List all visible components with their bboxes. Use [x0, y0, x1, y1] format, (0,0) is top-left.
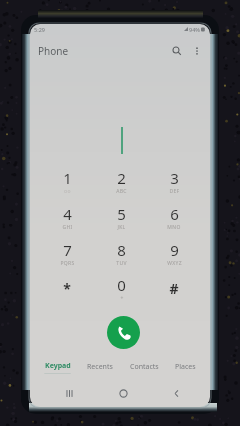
button[interactable]: 8 — [95, 237, 147, 271]
staticText: MNO — [167, 224, 181, 231]
staticText: Places — [175, 362, 196, 372]
staticText: Keypad — [45, 361, 71, 371]
staticText: 94% — [189, 26, 200, 33]
button[interactable]: 2 — [95, 165, 147, 199]
staticText: oo — [64, 188, 71, 195]
staticText: JKL — [117, 224, 126, 231]
staticText: TUV — [116, 260, 127, 267]
button[interactable]: Places — [172, 361, 199, 373]
button[interactable]: Keypad — [41, 360, 74, 375]
staticText: PQRS — [60, 260, 75, 267]
staticText: Contacts — [130, 362, 159, 372]
staticText: 5 — [117, 204, 126, 224]
staticText: 4 — [63, 204, 72, 224]
button[interactable]: Call — [107, 316, 140, 349]
staticText: DEF — [169, 188, 180, 195]
staticText: 3 — [170, 168, 179, 188]
button[interactable]: * — [41, 272, 93, 306]
button[interactable]: 6 — [148, 201, 200, 235]
button[interactable]: 4 — [41, 201, 93, 235]
button[interactable]: 1 — [41, 165, 93, 199]
button[interactable]: Contacts — [127, 361, 162, 373]
button[interactable]: 7 — [41, 237, 93, 271]
staticText: * — [63, 279, 71, 298]
staticText: 9 — [170, 240, 179, 260]
button[interactable]: Recent apps — [59, 383, 79, 403]
button[interactable]: # — [148, 272, 200, 306]
button[interactable]: Recents — [84, 361, 116, 373]
staticText: 5:29 — [34, 26, 45, 33]
staticText: 1 — [63, 168, 72, 188]
staticText: WXYZ — [167, 260, 182, 267]
staticText: 0 — [117, 275, 126, 295]
staticText: Recents — [87, 362, 113, 372]
staticText: GHI — [62, 224, 73, 231]
staticText: + — [120, 295, 124, 302]
button[interactable]: 3 — [148, 165, 200, 199]
staticText: 8 — [117, 240, 126, 260]
staticText: ABC — [116, 188, 127, 195]
staticText: # — [169, 279, 179, 298]
button[interactable]: Back — [166, 383, 186, 403]
button[interactable]: 5 — [95, 201, 147, 235]
staticText: Phone — [38, 44, 69, 58]
button[interactable]: More options — [187, 41, 207, 61]
button[interactable]: 9 — [148, 237, 200, 271]
staticText: 7 — [63, 240, 72, 260]
button[interactable]: Home — [113, 383, 133, 403]
button[interactable]: 0 — [95, 272, 147, 306]
staticText: 2 — [117, 168, 126, 188]
staticText: 6 — [170, 204, 179, 224]
button[interactable]: Search — [167, 41, 187, 61]
